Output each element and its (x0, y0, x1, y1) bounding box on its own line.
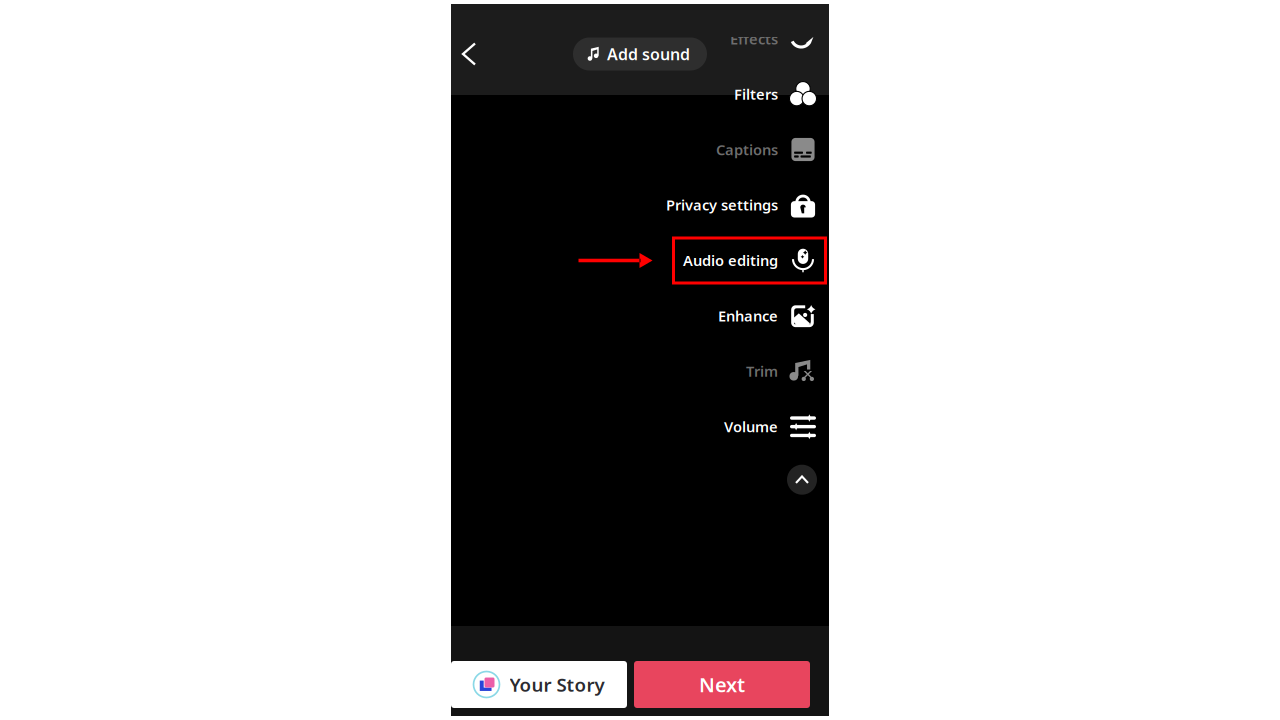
button[interactable]: Audio editing (451, 233, 829, 288)
button[interactable]: Add sound (573, 37, 707, 70)
button[interactable]: Captions (451, 122, 829, 177)
staticText: Filters (734, 84, 778, 104)
staticText: Volume (724, 417, 778, 436)
button[interactable]: Effects (451, 11, 829, 66)
button[interactable]: Next (634, 661, 810, 708)
button[interactable]: Back (451, 30, 491, 78)
staticText: Captions (716, 140, 778, 159)
staticText: Add sound (607, 43, 690, 65)
staticText: Enhance (718, 306, 778, 325)
button[interactable]: Privacy settings (451, 177, 829, 233)
staticText: Effects (730, 29, 778, 48)
staticText: Trim (746, 361, 778, 381)
button[interactable]: Trim (451, 343, 829, 399)
staticText: Next (699, 671, 745, 698)
button[interactable]: Collapse menu (787, 465, 817, 495)
staticText: Your Story (509, 672, 604, 697)
button[interactable]: Volume (451, 399, 829, 454)
button[interactable]: Filters (451, 66, 829, 122)
staticText: Privacy settings (666, 195, 778, 215)
button[interactable]: Enhance (451, 288, 829, 343)
button[interactable]: Your Story (451, 661, 627, 708)
staticText: Audio editing (683, 251, 778, 270)
